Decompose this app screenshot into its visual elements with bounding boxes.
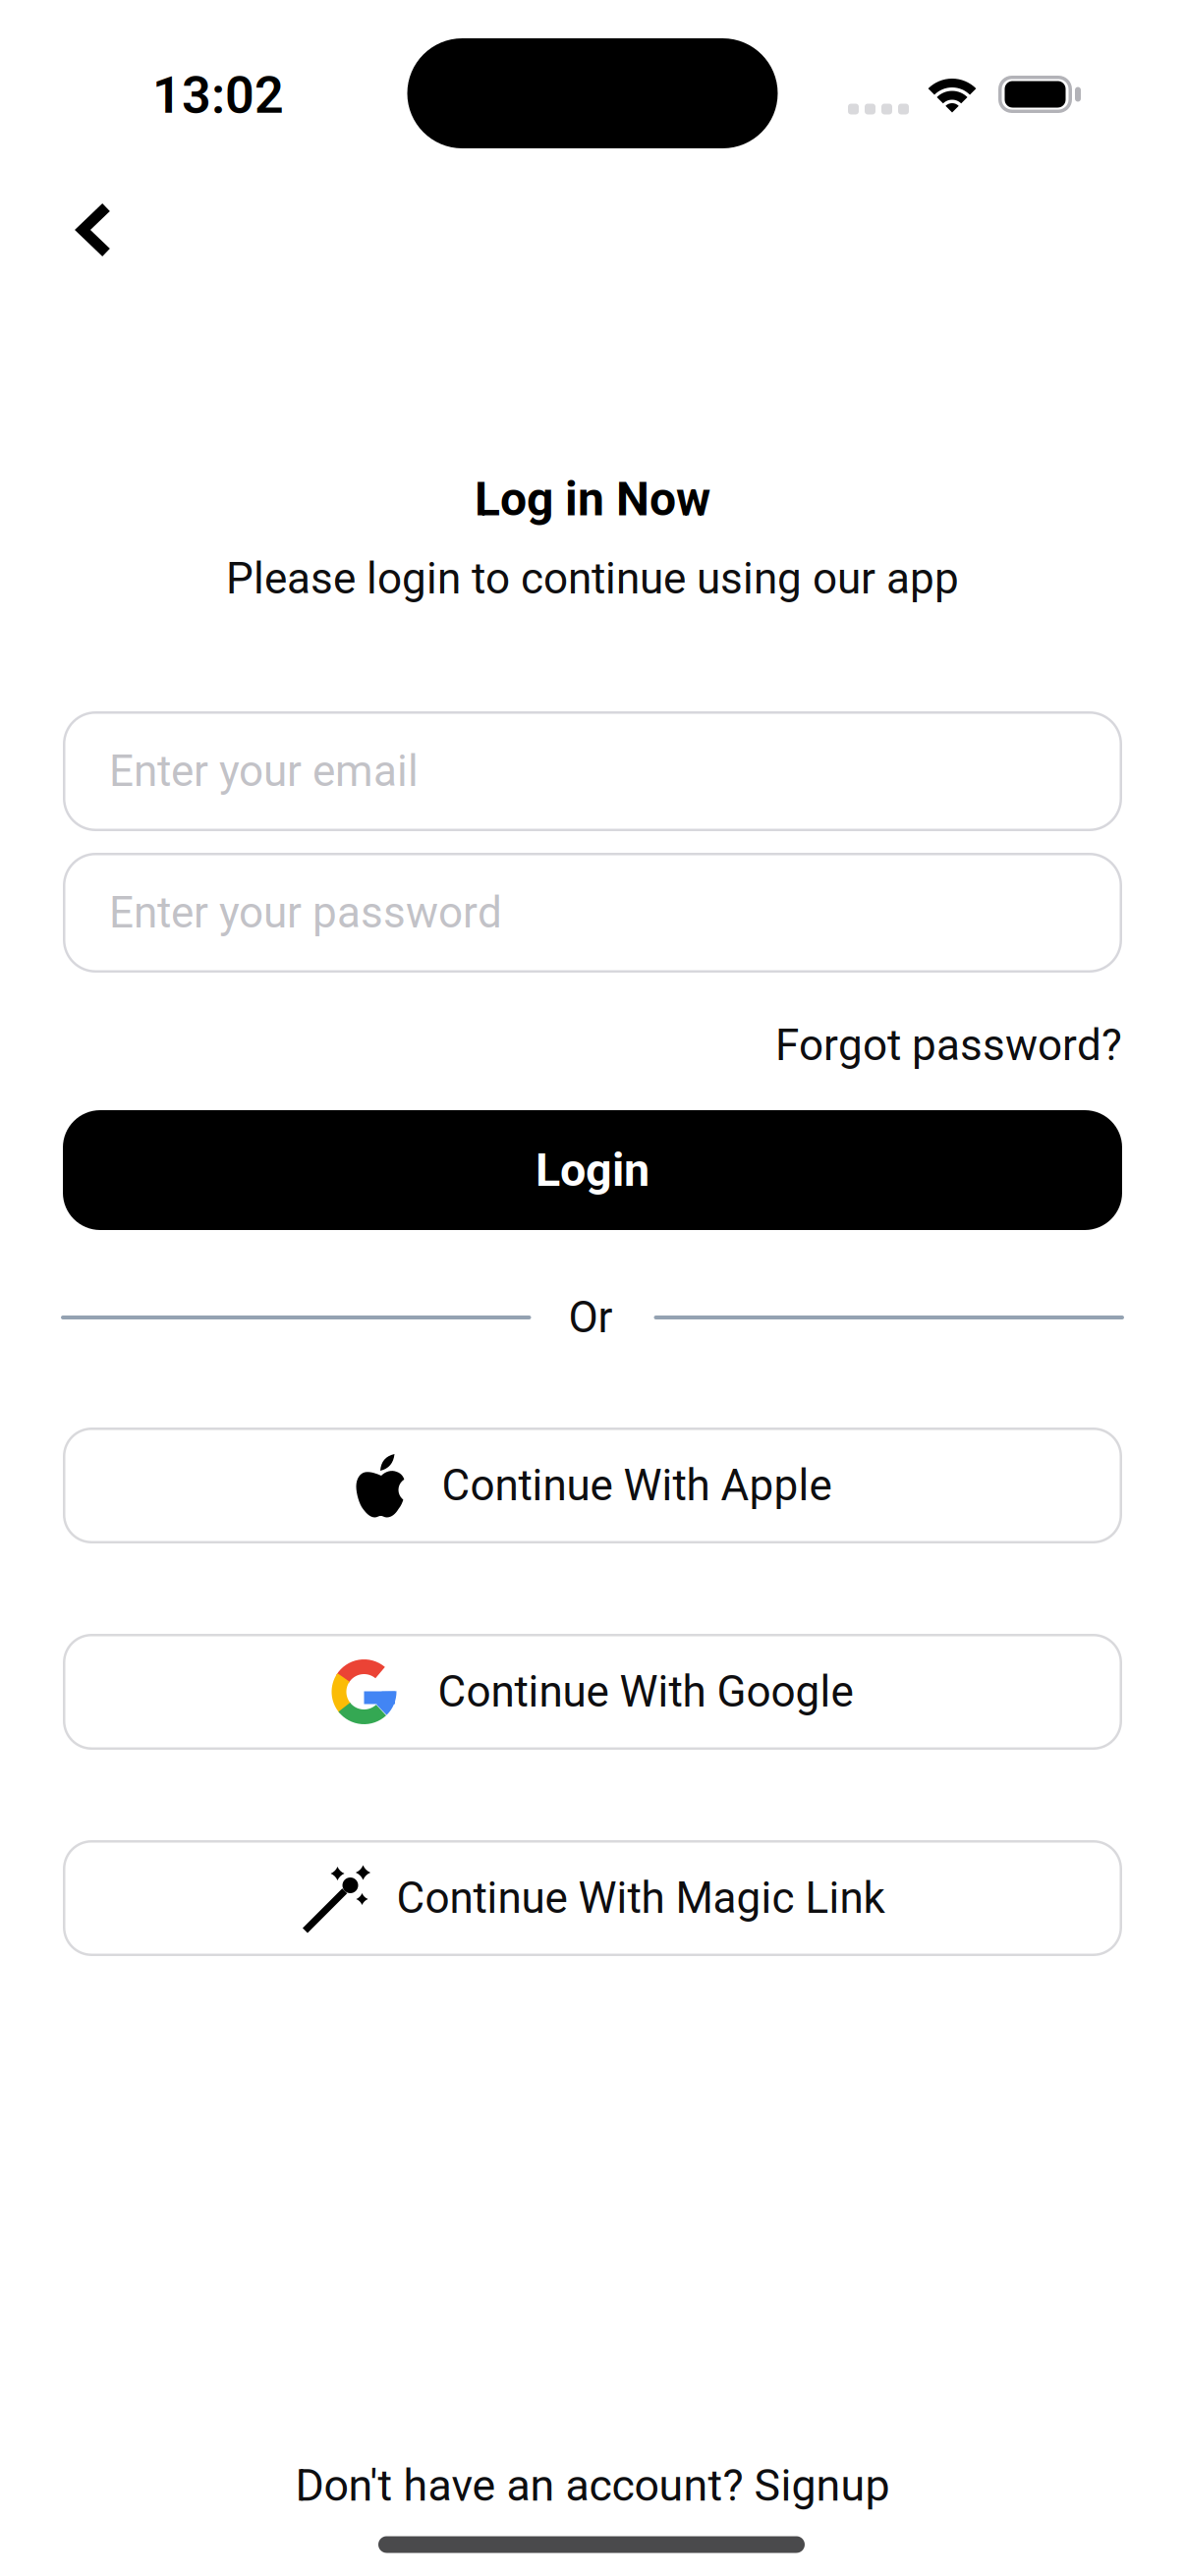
- staticText: Log in Now: [475, 471, 710, 527]
- staticText: Continue With Apple: [442, 1460, 832, 1511]
- button[interactable]: Forgot password?: [775, 1020, 1122, 1071]
- staticText: Continue With Magic Link: [396, 1873, 885, 1923]
- staticText: Enter your email: [109, 746, 419, 797]
- button[interactable]: Continue With Magic Link: [63, 1840, 1122, 1956]
- button[interactable]: Enter your email: [63, 711, 1122, 831]
- button[interactable]: Continue With Google: [63, 1634, 1122, 1750]
- button[interactable]: Back: [77, 202, 112, 257]
- button[interactable]: Continue With Apple: [63, 1428, 1122, 1543]
- staticText: Enter your password: [109, 887, 502, 938]
- button[interactable]: Don't have an account? Signup: [295, 2460, 890, 2511]
- staticText: Login: [536, 1143, 649, 1197]
- staticText: Don't have an account? Signup: [295, 2460, 890, 2511]
- staticText: Forgot password?: [775, 1020, 1122, 1071]
- staticText: Continue With Google: [438, 1666, 853, 1717]
- staticText: 13:02: [152, 65, 284, 125]
- button[interactable]: Enter your password: [63, 853, 1122, 973]
- staticText: Please login to continue using our app: [226, 553, 959, 604]
- button[interactable]: Login: [63, 1110, 1122, 1230]
- staticText: Or: [568, 1292, 613, 1343]
